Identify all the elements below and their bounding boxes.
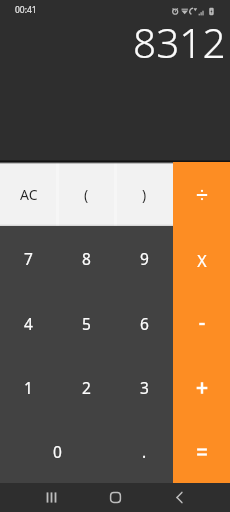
staticText: 5 [82,313,91,334]
button[interactable]: Divide [173,162,230,226]
button[interactable]: 6 [115,291,173,355]
staticText: AC [20,185,38,204]
button[interactable]: ) [115,162,173,226]
staticText: . [142,441,147,462]
button[interactable]: Equals [173,419,230,483]
button[interactable]: 9 [115,226,173,291]
staticText: 6 [140,313,149,334]
staticText: X [194,250,210,272]
button[interactable]: AC [0,162,57,226]
button[interactable]: 0 [0,419,115,483]
button[interactable]: Home [95,483,135,512]
staticText: 1 [24,377,33,398]
button[interactable]: . [115,419,173,483]
staticText: 3 [140,377,149,398]
staticText: 4 [24,313,33,334]
staticText: ) [142,185,147,204]
staticText: 8312 [133,15,226,70]
button[interactable]: Recent apps [31,483,71,512]
button[interactable]: 7 [0,226,57,291]
button[interactable]: 4 [0,291,57,355]
staticText: ( [84,185,89,204]
staticText: 2 [82,377,91,398]
staticText: 7 [24,248,33,269]
button[interactable]: Plus [173,355,230,419]
button[interactable]: Multiply [173,226,230,291]
button[interactable]: 8 [57,226,115,291]
staticText: 00:41 [15,4,37,16]
button[interactable]: 3 [115,355,173,419]
button[interactable]: 5 [57,291,115,355]
button[interactable]: 2 [57,355,115,419]
staticText: 8 [82,248,91,269]
staticText: 9 [140,248,149,269]
button[interactable]: Minus [173,291,230,355]
button[interactable]: Back [160,483,200,512]
staticText: 0 [53,441,62,462]
button[interactable]: ( [57,162,115,226]
button[interactable]: 1 [0,355,57,419]
